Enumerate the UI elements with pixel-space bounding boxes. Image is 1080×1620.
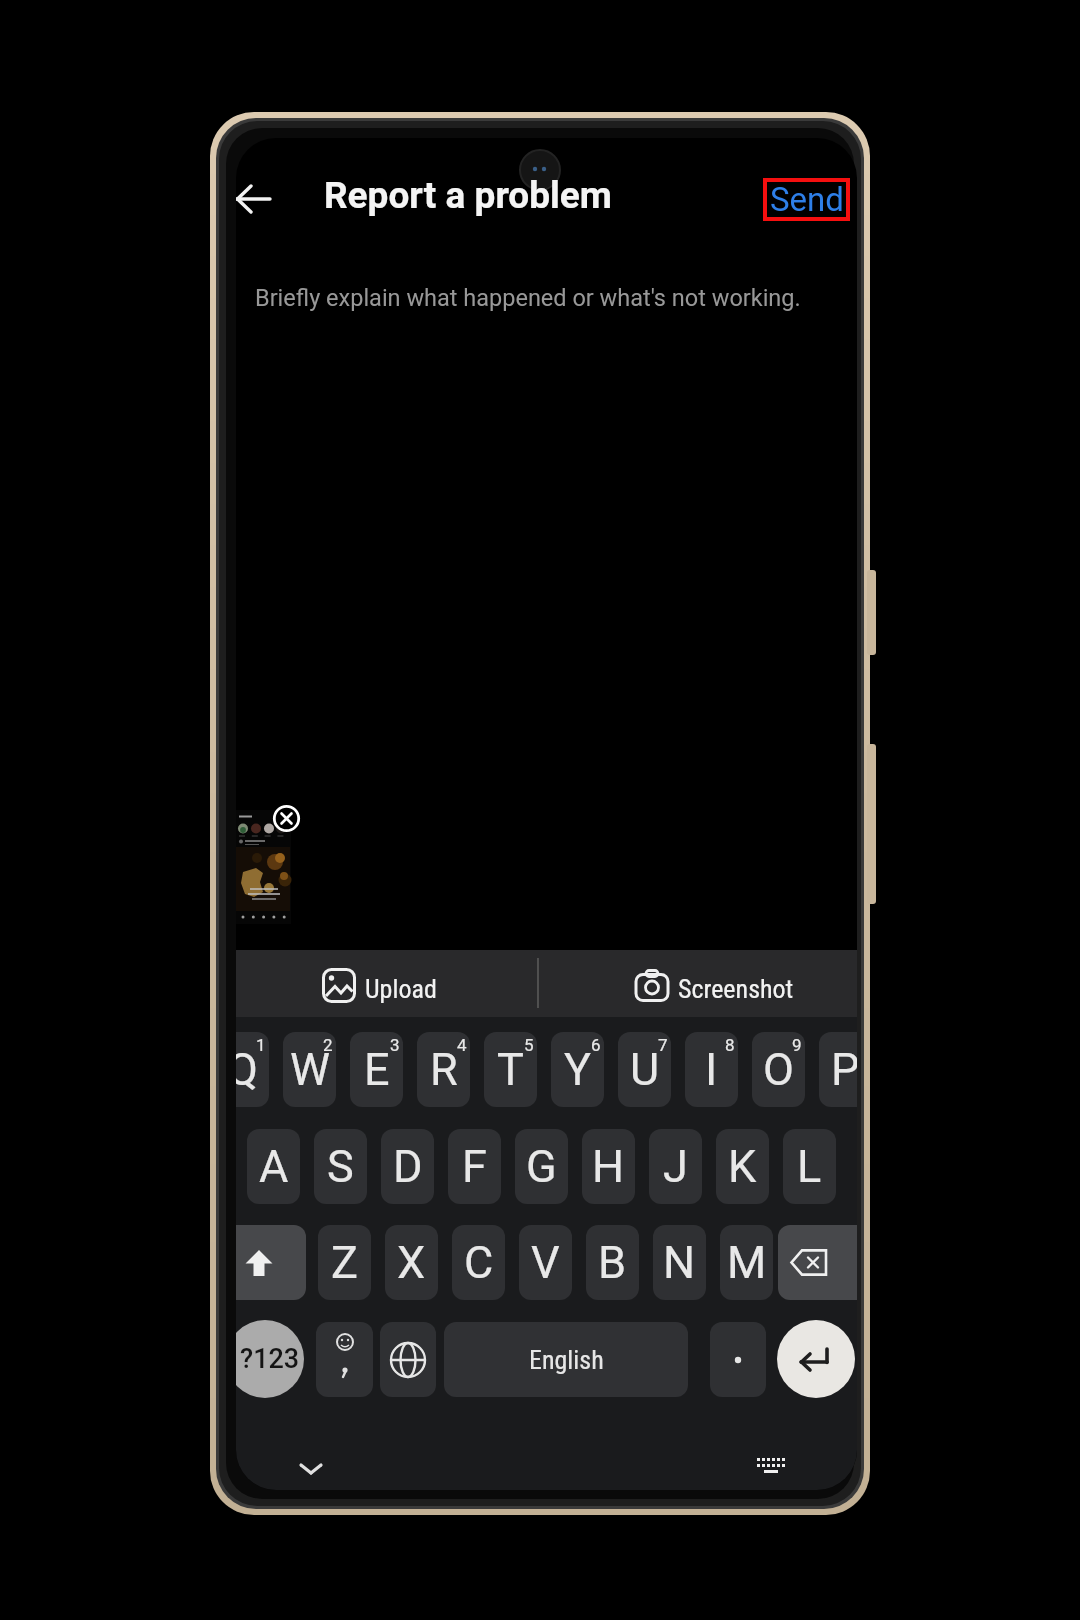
staticText: F xyxy=(462,1140,487,1193)
staticText: Briefly explain what happened or what's … xyxy=(255,284,801,312)
staticText: M xyxy=(727,1236,767,1289)
staticText: 3 xyxy=(390,1035,400,1055)
staticText: J xyxy=(663,1140,688,1193)
button[interactable]: M xyxy=(720,1225,773,1300)
button[interactable] xyxy=(236,810,291,924)
button[interactable]: I xyxy=(685,1032,738,1107)
staticText: 9 xyxy=(792,1035,802,1055)
staticText: B xyxy=(598,1236,627,1289)
staticText: V xyxy=(531,1236,560,1289)
button[interactable] xyxy=(755,1455,787,1481)
staticText: X xyxy=(397,1236,426,1289)
button[interactable]: U xyxy=(618,1032,671,1107)
button[interactable] xyxy=(380,1322,436,1397)
staticText: T xyxy=(497,1043,524,1096)
staticText: 7 xyxy=(658,1035,668,1055)
button[interactable]: Z xyxy=(318,1225,371,1300)
button[interactable]: English xyxy=(444,1322,688,1397)
button[interactable]: T xyxy=(484,1032,537,1107)
staticText: I xyxy=(705,1043,718,1096)
staticText: Q xyxy=(236,1043,258,1096)
staticText: Y xyxy=(564,1043,592,1096)
staticText: Upload xyxy=(365,974,437,1004)
staticText: K xyxy=(728,1140,757,1193)
staticText: 5 xyxy=(524,1035,534,1055)
staticText: 6 xyxy=(591,1035,601,1055)
staticText: U xyxy=(630,1043,660,1096)
button[interactable] xyxy=(778,1225,857,1300)
button[interactable]: S xyxy=(314,1129,367,1204)
staticText: L xyxy=(797,1140,822,1193)
button[interactable]: B xyxy=(586,1225,639,1300)
staticText: 8 xyxy=(725,1035,735,1055)
button[interactable] xyxy=(236,182,272,216)
staticText: W xyxy=(290,1043,330,1096)
staticText: P xyxy=(831,1043,857,1096)
staticText: Z xyxy=(331,1236,358,1289)
button[interactable]: G xyxy=(515,1129,568,1204)
staticText: E xyxy=(364,1043,390,1096)
button[interactable]: V xyxy=(519,1225,572,1300)
button[interactable]: A xyxy=(247,1129,300,1204)
button[interactable]: D xyxy=(381,1129,434,1204)
button[interactable] xyxy=(777,1320,855,1398)
button[interactable]: ?123 xyxy=(236,1320,304,1398)
button[interactable]: P xyxy=(819,1032,857,1107)
button[interactable]: J xyxy=(649,1129,702,1204)
button[interactable] xyxy=(236,1225,306,1300)
staticText: O xyxy=(763,1043,794,1096)
button[interactable]: C xyxy=(452,1225,505,1300)
staticText: 1 xyxy=(256,1035,266,1055)
staticText: S xyxy=(327,1140,354,1193)
button[interactable] xyxy=(236,950,538,1017)
staticText: G xyxy=(526,1140,557,1193)
button[interactable]: R xyxy=(417,1032,470,1107)
button[interactable]: L xyxy=(783,1129,836,1204)
staticText: R xyxy=(430,1043,458,1096)
staticText: N xyxy=(663,1236,696,1289)
button[interactable] xyxy=(710,1322,766,1397)
button[interactable]: Q xyxy=(236,1032,269,1107)
button[interactable]: N xyxy=(653,1225,706,1300)
button[interactable]: E xyxy=(350,1032,403,1107)
button[interactable]: K xyxy=(716,1129,769,1204)
button[interactable] xyxy=(316,1322,373,1397)
staticText: ?123 xyxy=(240,1343,300,1375)
staticText: C xyxy=(464,1236,494,1289)
staticText: H xyxy=(592,1140,625,1193)
button[interactable] xyxy=(538,950,857,1017)
staticText: 4 xyxy=(457,1035,467,1055)
staticText: Screenshot xyxy=(678,974,794,1004)
staticText: D xyxy=(393,1140,423,1193)
staticText: Report a problem xyxy=(324,174,612,217)
button[interactable]: H xyxy=(582,1129,635,1204)
staticText: A xyxy=(259,1140,289,1193)
button[interactable]: Y xyxy=(551,1032,604,1107)
button[interactable]: Send xyxy=(763,178,850,221)
button[interactable] xyxy=(272,804,301,833)
button[interactable]: O xyxy=(752,1032,805,1107)
button[interactable] xyxy=(298,1461,324,1477)
button[interactable]: F xyxy=(448,1129,501,1204)
button[interactable]: X xyxy=(385,1225,438,1300)
staticText: English xyxy=(529,1345,604,1375)
staticText: 2 xyxy=(323,1035,333,1055)
button[interactable]: W xyxy=(283,1032,336,1107)
staticText: Send xyxy=(770,180,844,219)
